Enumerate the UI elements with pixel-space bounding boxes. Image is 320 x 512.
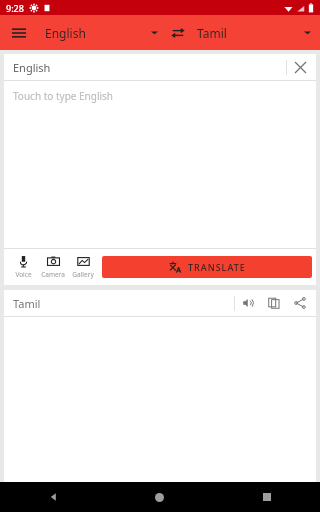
staticText: Tamil bbox=[197, 25, 227, 41]
button[interactable]: Clear bbox=[287, 54, 313, 80]
staticText: English bbox=[13, 60, 51, 75]
button[interactable]: Back bbox=[0, 482, 106, 512]
button[interactable]: English bbox=[38, 15, 163, 50]
staticText: 9:28 bbox=[6, 2, 24, 14]
staticText: Tamil bbox=[13, 296, 41, 311]
staticText: TRANSLATE bbox=[188, 261, 246, 273]
button[interactable]: Gallery bbox=[68, 249, 98, 285]
button[interactable]: Swap languages bbox=[163, 18, 193, 48]
button[interactable]: Touch to type English bbox=[4, 81, 316, 248]
button[interactable]: Voice bbox=[8, 249, 38, 285]
button[interactable]: Recent apps bbox=[213, 482, 320, 512]
button[interactable]: TRANSLATE bbox=[102, 256, 312, 278]
button[interactable]: Copy bbox=[261, 290, 287, 316]
button[interactable]: Menu bbox=[0, 15, 38, 50]
staticText: Gallery bbox=[72, 270, 94, 279]
button[interactable]: Tamil bbox=[193, 15, 320, 50]
staticText: Voice bbox=[15, 270, 32, 279]
button[interactable]: Share bbox=[287, 290, 313, 316]
staticText: Touch to type English bbox=[13, 89, 114, 103]
button[interactable]: Home bbox=[106, 482, 213, 512]
button[interactable]: Listen bbox=[235, 290, 261, 316]
staticText: Camera bbox=[41, 270, 65, 279]
button[interactable]: Camera bbox=[38, 249, 68, 285]
staticText: English bbox=[45, 25, 86, 41]
